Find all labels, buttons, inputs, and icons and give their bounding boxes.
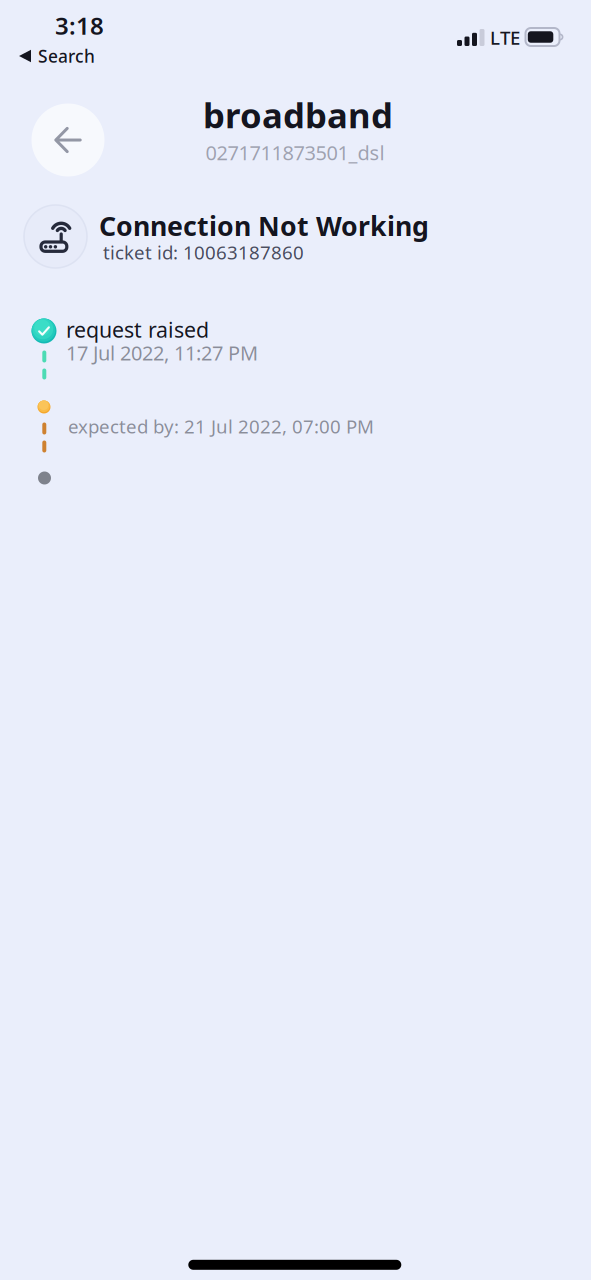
staticText: Search bbox=[38, 44, 95, 67]
staticText: Connection Not Working bbox=[99, 208, 429, 243]
staticText: broadband bbox=[203, 92, 393, 138]
staticText: request raised bbox=[66, 315, 209, 343]
staticText: 0271711873501_dsl bbox=[205, 139, 384, 166]
staticText: 3:18 bbox=[55, 10, 104, 41]
staticText: 17 Jul 2022, 11:27 PM bbox=[66, 339, 258, 366]
staticText: expected by: 21 Jul 2022, 07:00 PM bbox=[68, 414, 374, 439]
staticText: LTE bbox=[490, 25, 520, 50]
button[interactable]: Search bbox=[19, 43, 109, 69]
button[interactable]: Back bbox=[31, 103, 104, 176]
staticText: ticket id: 10063187860 bbox=[103, 240, 304, 265]
